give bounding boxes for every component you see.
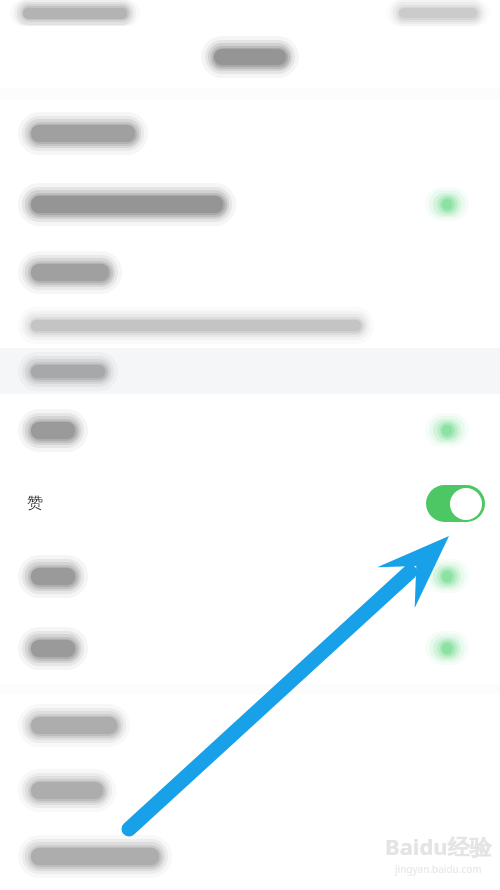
staticText: 赞 (27, 493, 43, 513)
staticText: Baidu经验 (385, 831, 492, 861)
button[interactable] (0, 242, 500, 302)
button[interactable] (0, 166, 500, 242)
button[interactable] (0, 824, 500, 888)
button[interactable] (0, 100, 500, 166)
button[interactable]: 赞 (0, 466, 500, 540)
button[interactable] (0, 540, 500, 612)
button[interactable] (0, 612, 500, 684)
staticText: jingyan.baidu.com (395, 862, 482, 876)
button[interactable] (0, 756, 500, 824)
button[interactable] (0, 694, 500, 756)
button[interactable] (0, 394, 500, 466)
button[interactable]: 赞 开关 (426, 485, 485, 522)
